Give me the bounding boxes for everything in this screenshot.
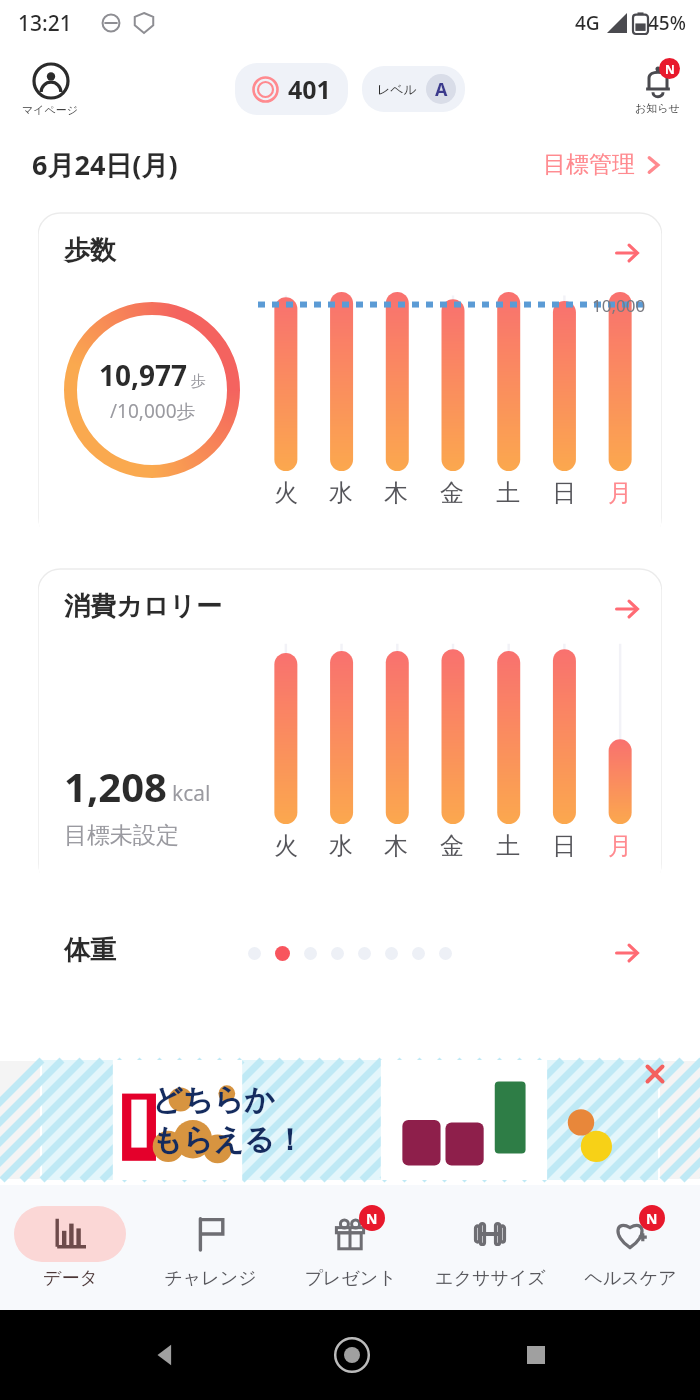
staticText: 目標管理 xyxy=(543,150,635,179)
staticText: 10,977 xyxy=(99,356,188,394)
staticText: 金 xyxy=(440,831,464,861)
button[interactable]: レベル xyxy=(362,66,465,112)
button[interactable]: マイページ xyxy=(16,60,85,119)
staticText: チャレンジ xyxy=(164,1267,257,1290)
staticText: /10,000歩 xyxy=(110,398,196,424)
staticText: 土 xyxy=(496,478,520,508)
staticText: 土 xyxy=(496,831,520,861)
staticText: ヘルスケア xyxy=(584,1267,677,1290)
other: 消費カロリー詳細 xyxy=(614,596,640,622)
button[interactable]: ホーム xyxy=(332,1335,372,1375)
staticText: プレゼント xyxy=(304,1267,397,1290)
staticText: どちらか もらえる！ xyxy=(152,1081,305,1159)
button[interactable]: 歩数 xyxy=(38,210,662,540)
staticText: レベル xyxy=(377,81,417,97)
staticText: 1,208 xyxy=(64,759,167,813)
button[interactable]: 目標管理 xyxy=(539,146,668,183)
button[interactable]: N xyxy=(560,1185,700,1310)
staticText: マイページ xyxy=(22,103,79,117)
button[interactable]: データ xyxy=(0,1185,140,1310)
staticText: 13:21 xyxy=(18,9,72,38)
staticText: 木 xyxy=(384,478,408,508)
staticText: 月 xyxy=(608,478,632,508)
staticText: 4G xyxy=(575,10,600,36)
staticText: 10,000 xyxy=(592,294,646,317)
staticText: エクササイズ xyxy=(435,1267,546,1290)
staticText: kcal xyxy=(172,779,211,808)
button[interactable]: エクササイズ xyxy=(420,1185,560,1310)
button[interactable]: N xyxy=(280,1185,420,1310)
staticText: 火 xyxy=(274,478,298,508)
button[interactable]: 最近のアプリ xyxy=(521,1340,551,1370)
staticText: 6月24日(月) xyxy=(32,146,178,183)
staticText: N xyxy=(665,61,675,77)
staticText: N xyxy=(646,1209,658,1228)
staticText: お知らせ xyxy=(635,101,680,115)
staticText: 目標未設定 xyxy=(64,821,179,850)
staticText: 金 xyxy=(440,478,464,508)
staticText: 月 xyxy=(608,831,632,861)
other: 体重詳細 xyxy=(614,940,640,966)
button[interactable]: 401 xyxy=(235,63,348,115)
button[interactable]: 広告を閉じる xyxy=(640,1059,670,1089)
staticText: 水 xyxy=(329,478,353,508)
staticText: 火 xyxy=(274,831,298,861)
button[interactable]: 戻る xyxy=(149,1338,183,1372)
button[interactable]: 体重 xyxy=(38,910,662,990)
staticText: 水 xyxy=(329,831,353,861)
staticText: 歩 xyxy=(191,372,206,391)
staticText: 木 xyxy=(384,831,408,861)
staticText: A xyxy=(435,77,448,102)
staticText: N xyxy=(366,1209,378,1228)
button[interactable]: 消費カロリー xyxy=(38,566,662,886)
staticText: 消費カロリー xyxy=(64,590,222,623)
staticText: 401 xyxy=(288,72,331,106)
staticText: 45% xyxy=(648,10,686,36)
staticText: 歩数 xyxy=(64,234,116,267)
staticText: 日 xyxy=(552,831,576,861)
staticText: 日 xyxy=(552,478,576,508)
other: 歩数詳細 xyxy=(614,240,640,266)
button[interactable]: お知らせ xyxy=(631,63,684,115)
button[interactable]: どちらか もらえる！ xyxy=(42,1060,658,1180)
staticText: 体重 xyxy=(64,934,116,967)
staticText: データ xyxy=(43,1267,98,1290)
button[interactable]: チャレンジ xyxy=(140,1185,280,1310)
